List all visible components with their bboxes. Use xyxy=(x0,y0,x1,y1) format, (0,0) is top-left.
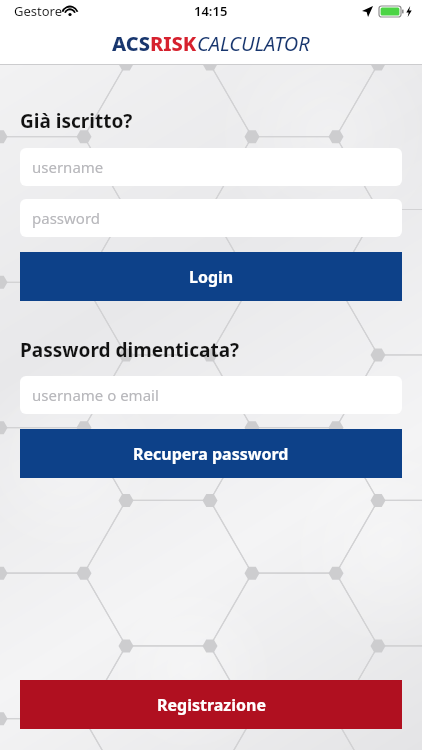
button[interactable]: Recupera password xyxy=(20,429,402,478)
staticText: Gestore xyxy=(14,2,63,20)
staticText: 14:15 xyxy=(194,2,228,20)
staticText: Già iscritto? xyxy=(20,108,133,134)
staticText: username o email xyxy=(32,385,159,405)
staticText: username xyxy=(32,157,104,177)
button[interactable]: Login xyxy=(20,252,402,301)
staticText: ACS xyxy=(112,30,150,57)
staticText: Login xyxy=(189,266,234,288)
button[interactable]: Registrazione xyxy=(20,680,402,729)
staticText: CALCULATOR xyxy=(197,30,310,57)
button[interactable]: username xyxy=(20,148,402,186)
button[interactable]: password xyxy=(20,199,402,237)
button[interactable]: username o email xyxy=(20,376,402,414)
staticText: RISK xyxy=(150,30,197,57)
staticText: Registrazione xyxy=(157,694,266,716)
other: Location xyxy=(362,6,373,17)
other: Wi-Fi xyxy=(62,3,78,19)
staticText: password xyxy=(32,208,100,228)
staticText: Password dimenticata? xyxy=(20,337,240,363)
staticText: Recupera password xyxy=(133,443,289,465)
